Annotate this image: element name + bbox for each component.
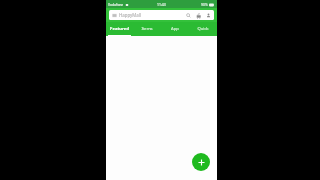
button[interactable]: Search <box>185 12 192 19</box>
button[interactable]: Cart <box>195 12 202 19</box>
button[interactable]: Menu <box>111 12 117 18</box>
staticText: App <box>171 26 179 32</box>
staticText: HappyMall <box>119 12 141 18</box>
button[interactable]: Menu <box>109 10 214 20</box>
staticText: Featured <box>110 26 129 32</box>
staticText: Quick <box>197 26 209 32</box>
button[interactable]: Account <box>205 12 212 19</box>
button[interactable]: App <box>161 22 189 36</box>
button[interactable]: Add <box>192 153 210 171</box>
button[interactable]: Featured <box>106 22 133 36</box>
staticText: 90% <box>201 2 208 7</box>
button[interactable]: Items <box>133 22 161 36</box>
staticText: 11:43 <box>157 2 166 7</box>
button[interactable]: Quick <box>189 22 217 36</box>
staticText: Items <box>141 26 153 32</box>
staticText: Vodafone <box>108 2 124 7</box>
